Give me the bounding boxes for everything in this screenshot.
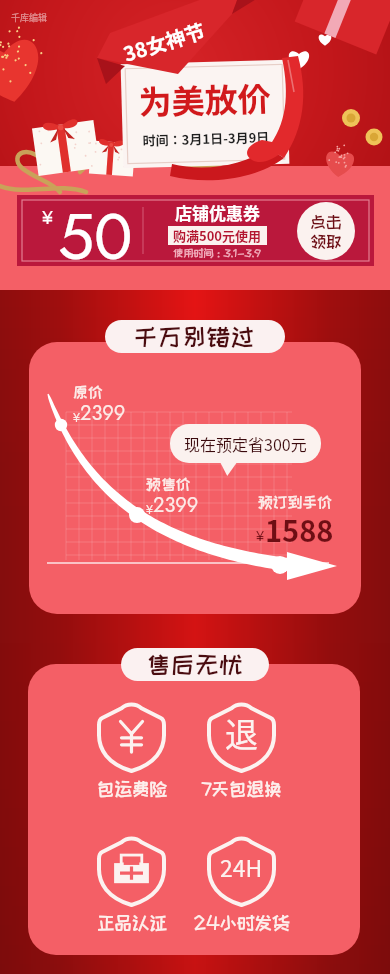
button[interactable]: 24小时发货	[179, 835, 304, 932]
staticText: 预订到手价	[258, 494, 332, 510]
staticText: 原价	[73, 384, 103, 400]
staticText: 售后无忧	[147, 652, 244, 677]
staticText: 使用时间：3.1-3.9	[173, 247, 261, 258]
staticText: 2399	[80, 399, 126, 428]
staticText: ¥	[146, 501, 153, 518]
staticText: 38女神节	[120, 15, 208, 68]
staticText: 预售价	[146, 476, 191, 492]
staticText: 24H	[220, 850, 263, 883]
staticText: 现在预定省300元	[184, 432, 307, 455]
staticText: 正品认证	[97, 913, 167, 932]
staticText: ¥	[42, 204, 54, 231]
button[interactable]: ¥	[17, 195, 374, 266]
staticText: 购满500元使用	[173, 226, 262, 245]
button[interactable]: 7天包退换	[179, 701, 304, 798]
staticText: 千万别错过	[134, 324, 256, 349]
staticText: 为美放价	[138, 73, 271, 125]
button[interactable]: 包运费险	[69, 701, 194, 798]
staticText: 7天包退换	[202, 779, 282, 798]
staticText: 千库编辑	[11, 11, 48, 24]
staticText: 时间：3月1日-3月9日	[142, 127, 270, 150]
button[interactable]: 正品认证	[69, 835, 194, 932]
staticText: 1588	[265, 508, 334, 550]
button[interactable]: 点击 领取	[297, 202, 355, 260]
staticText: 店铺优惠券	[175, 200, 260, 225]
staticText: 2399	[153, 491, 199, 520]
staticText: ¥	[256, 526, 265, 546]
staticText: 退	[225, 709, 258, 757]
staticText: ¥	[73, 409, 80, 426]
staticText: 24小时发货	[194, 913, 290, 932]
staticText: 包运费险	[97, 779, 167, 798]
staticText: 50	[58, 191, 133, 262]
staticText: 点击 领取	[310, 213, 342, 250]
